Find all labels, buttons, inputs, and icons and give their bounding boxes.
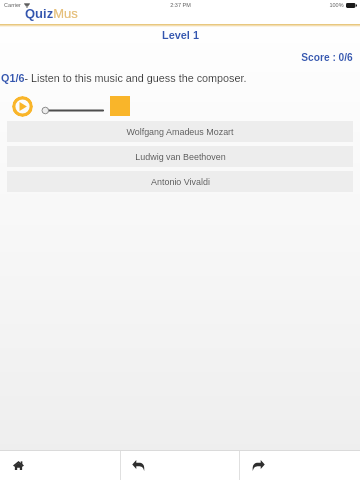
staticText: Wolfgang Amadeus Mozart — [126, 127, 234, 137]
staticText: QuizMus — [25, 6, 78, 21]
button[interactable]: Wolfgang Amadeus Mozart — [7, 121, 353, 142]
button[interactable]: Back — [120, 451, 239, 480]
staticText: Antonio Vivaldi — [151, 177, 210, 187]
staticText: Carrier — [4, 2, 21, 8]
staticText: Ludwig van Beethoven — [135, 152, 226, 162]
button[interactable]: Forward — [239, 451, 360, 480]
staticText: 2:37 PM — [170, 2, 191, 8]
staticText: Score : 0/6 — [301, 52, 353, 63]
button[interactable]: Home — [0, 451, 120, 480]
button[interactable]: Antonio Vivaldi — [7, 171, 353, 192]
staticText: 100% — [329, 2, 344, 8]
button[interactable]: Ludwig van Beethoven — [7, 146, 353, 167]
staticText: Level 1 — [162, 29, 199, 41]
button[interactable]: Play — [12, 96, 33, 117]
staticText: Q1/6- Listen to this music and guess the… — [1, 72, 247, 84]
